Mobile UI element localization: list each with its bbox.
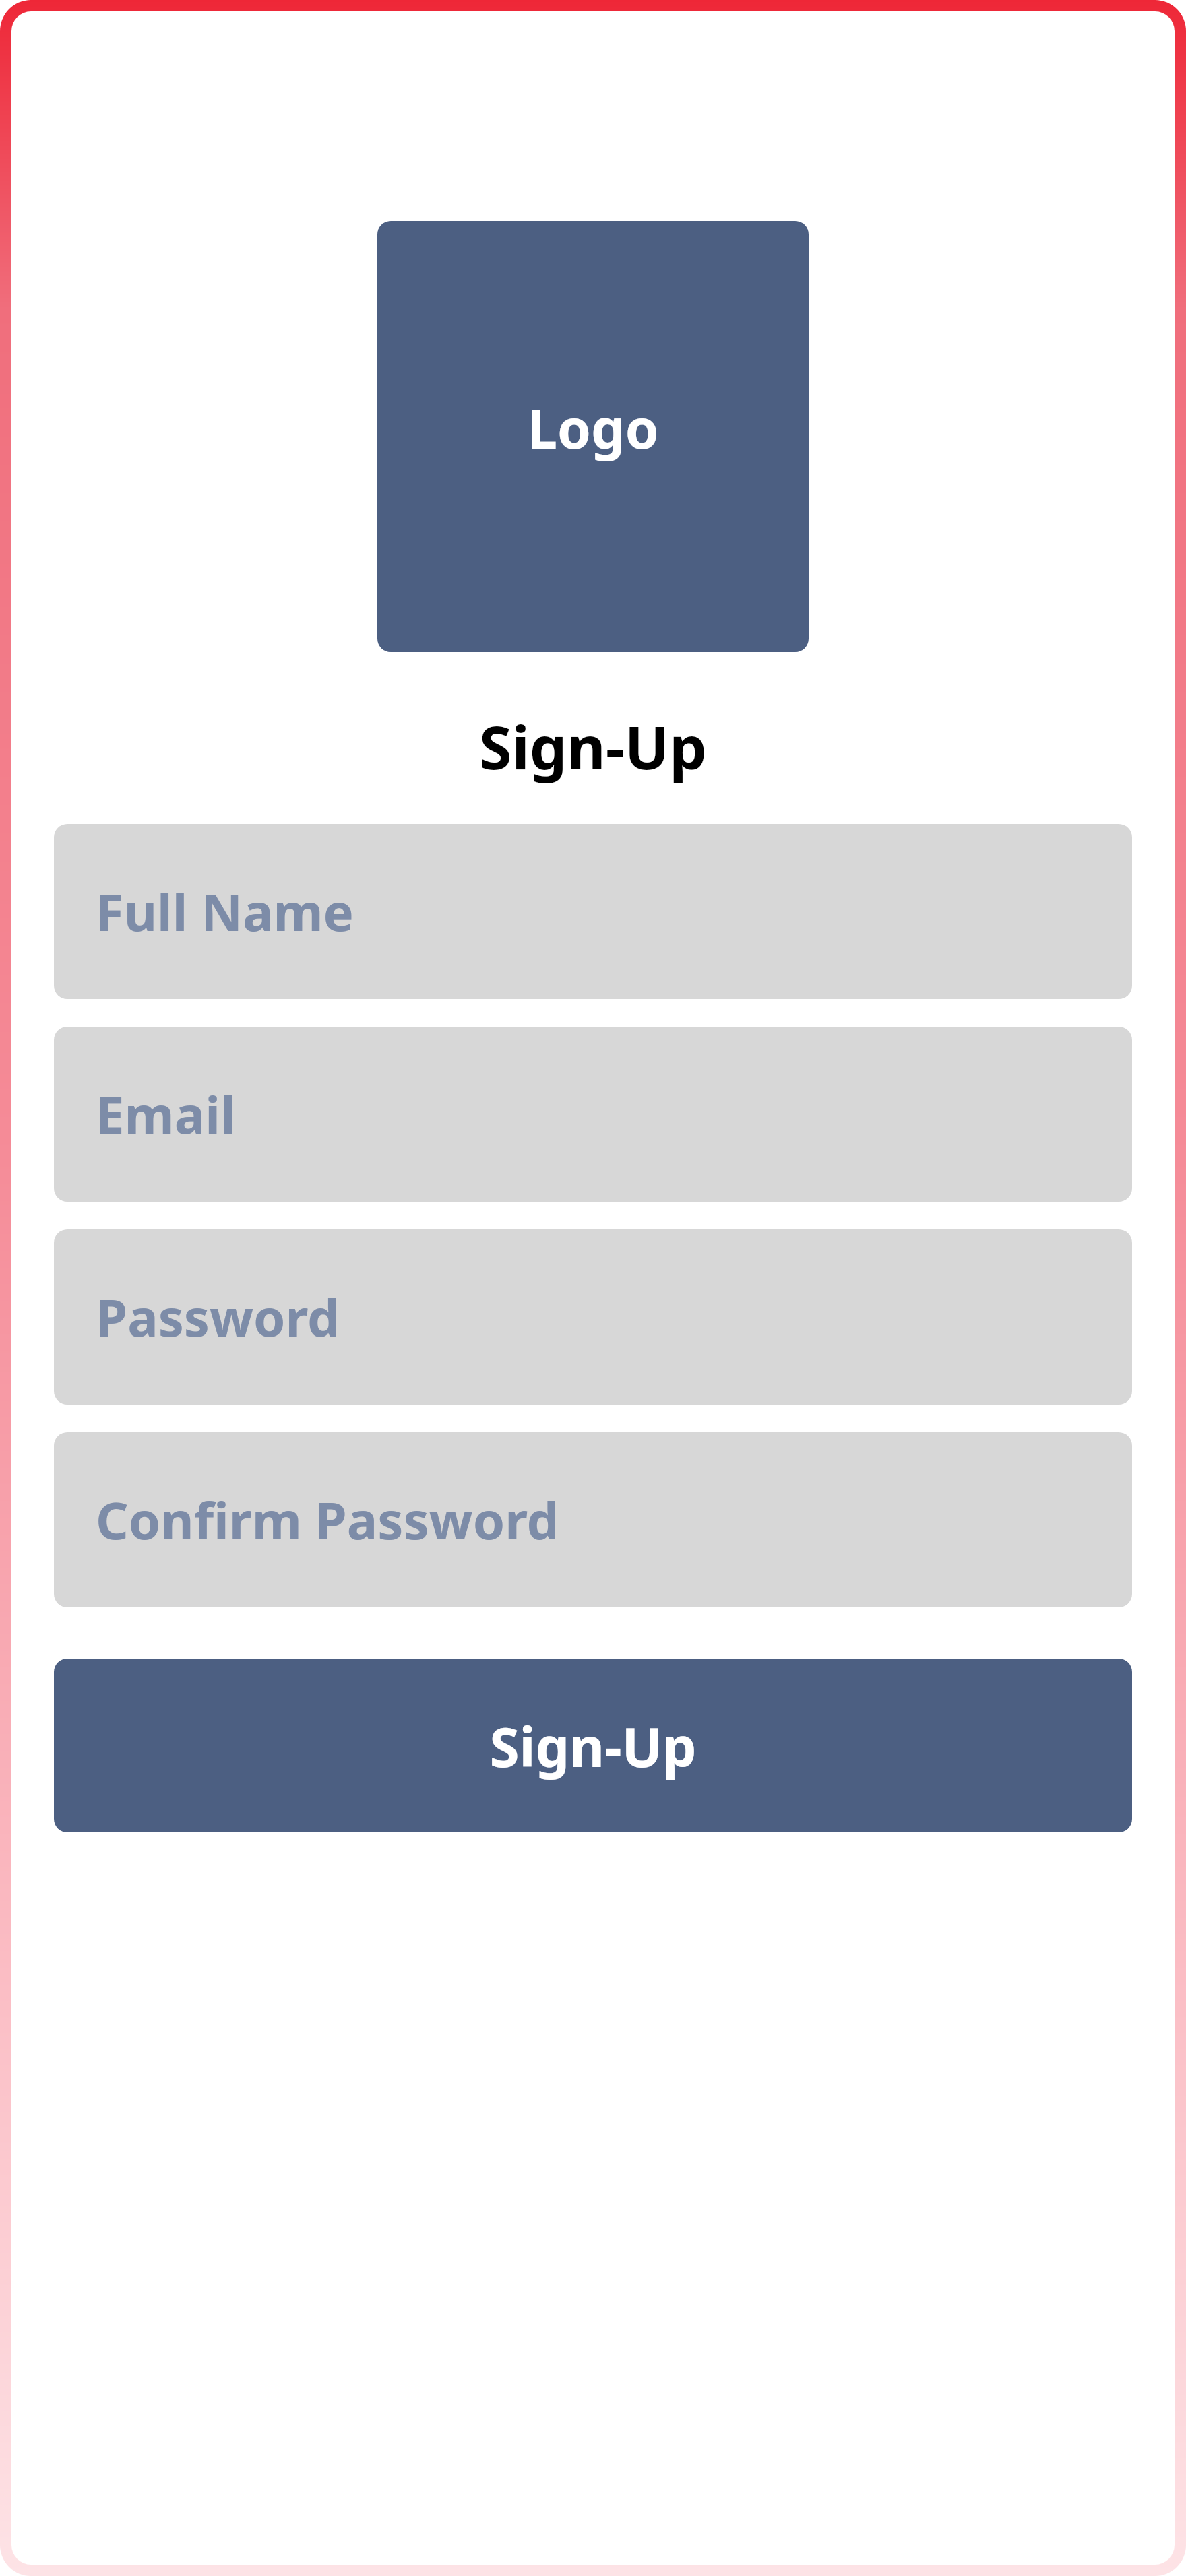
staticText: Email [96,1079,236,1149]
staticText: Confirm Password [96,1485,559,1555]
staticText: Sign-Up [489,1709,697,1782]
staticText: Logo [527,391,659,464]
button[interactable]: Email [54,1027,1132,1202]
button[interactable]: Confirm Password [54,1432,1132,1607]
button[interactable]: Logo [377,221,809,652]
button[interactable]: Password [54,1229,1132,1405]
staticText: Full Name [96,876,354,946]
staticText: Sign-Up [479,706,707,787]
staticText: Password [96,1282,340,1352]
button[interactable]: Full Name [54,824,1132,999]
button[interactable]: Sign-Up [54,1659,1132,1832]
